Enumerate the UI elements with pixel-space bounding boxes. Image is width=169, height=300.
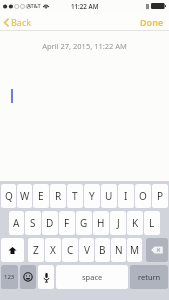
staticText: L [149, 216, 155, 230]
button[interactable]: P [152, 184, 168, 208]
staticText: 11:22 AM [71, 2, 99, 10]
staticText: April 27, 2015, 11:22 AM [0, 41, 169, 51]
button[interactable]: Q [1, 184, 16, 208]
button[interactable]: A [9, 211, 24, 235]
staticText: N [115, 243, 123, 257]
button[interactable]: Emoji [20, 265, 36, 289]
button[interactable]: I [118, 184, 134, 208]
button[interactable]: Done [135, 13, 169, 31]
button[interactable]: Shift [1, 238, 24, 262]
button[interactable]: H [93, 211, 109, 235]
button[interactable]: F [59, 211, 75, 235]
staticText: R [55, 189, 62, 203]
staticText: X [50, 243, 56, 257]
staticText: J [117, 216, 120, 230]
staticText: G [80, 216, 88, 230]
button[interactable]: D [42, 211, 58, 235]
staticText: Done [140, 16, 164, 28]
staticText: V [84, 243, 90, 257]
button[interactable]: return [130, 265, 168, 289]
staticText: Q [5, 189, 13, 203]
staticText: Z [33, 243, 39, 257]
staticText: F [64, 216, 70, 230]
staticText: A [13, 216, 20, 230]
button[interactable]: 123 [1, 265, 18, 289]
button[interactable]: N [111, 238, 126, 262]
staticText: return [138, 272, 161, 282]
button[interactable]: C [62, 238, 78, 262]
button[interactable]: J [110, 211, 126, 235]
staticText: Back [11, 16, 32, 28]
button[interactable]: G [76, 211, 92, 235]
staticText: S [30, 216, 36, 230]
button[interactable]: Dictate [38, 265, 54, 289]
button[interactable]: B [95, 238, 110, 262]
button[interactable]: T [67, 184, 83, 208]
staticText: T [72, 189, 78, 203]
staticText: E [38, 189, 44, 203]
staticText: O [139, 189, 147, 203]
staticText: H [97, 216, 105, 230]
button[interactable]: Backspace [146, 238, 168, 262]
staticText: AT&T [27, 2, 41, 10]
staticText: I [124, 189, 128, 203]
staticText: 123 [4, 273, 15, 281]
staticText: B [99, 243, 106, 257]
staticText: W [20, 189, 30, 203]
button[interactable]: X [45, 238, 61, 262]
button[interactable]: Z [28, 238, 44, 262]
button[interactable]: K [127, 211, 143, 235]
button[interactable]: O [135, 184, 151, 208]
button[interactable]: space [56, 265, 128, 289]
staticText: U [105, 189, 113, 203]
button[interactable]: L [144, 211, 160, 235]
staticText: Y [89, 189, 95, 203]
staticText: space [82, 272, 103, 282]
staticText: D [46, 216, 54, 230]
button[interactable]: R [50, 184, 66, 208]
button[interactable]: E [33, 184, 49, 208]
button[interactable]: M [127, 238, 142, 262]
button[interactable]: S [25, 211, 41, 235]
button[interactable]: W [17, 184, 32, 208]
button[interactable]: Back [0, 13, 38, 31]
button[interactable]: U [101, 184, 117, 208]
button[interactable]: V [79, 238, 94, 262]
staticText: M [130, 243, 140, 257]
staticText: C [67, 243, 74, 257]
button[interactable]: Y [84, 184, 100, 208]
staticText: P [157, 189, 164, 203]
staticText: K [132, 216, 139, 230]
